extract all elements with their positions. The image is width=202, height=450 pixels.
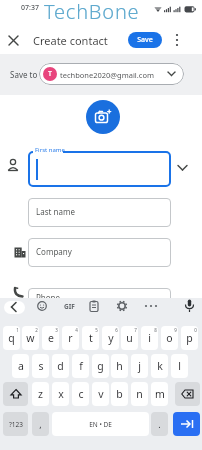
- staticText: t: [89, 331, 93, 345]
- staticText: Last name: [36, 206, 75, 217]
- staticText: 07:37: [21, 3, 39, 13]
- staticText: T: [48, 69, 52, 79]
- staticText: Create contact: [33, 33, 108, 48]
- button[interactable]: q: [3, 326, 20, 350]
- staticText: f: [79, 359, 83, 373]
- staticText: Save: [137, 35, 153, 45]
- button[interactable]: h: [111, 354, 128, 378]
- staticText: 5: [95, 327, 98, 333]
- button[interactable]: [4, 31, 22, 49]
- staticText: q: [8, 331, 15, 345]
- button[interactable]: j: [131, 354, 148, 378]
- button[interactable]: .: [151, 412, 168, 436]
- button[interactable]: t: [82, 326, 99, 350]
- staticText: x: [58, 387, 64, 401]
- staticText: o: [166, 331, 173, 345]
- staticText: v: [98, 387, 104, 401]
- button[interactable]: u: [121, 326, 138, 350]
- button[interactable]: [177, 164, 188, 172]
- staticText: w: [26, 331, 35, 345]
- button[interactable]: [37, 301, 47, 311]
- button[interactable]: [86, 100, 120, 134]
- button[interactable]: Phone: [28, 288, 171, 317]
- staticText: u: [126, 331, 133, 345]
- button[interactable]: b: [111, 382, 128, 406]
- staticText: First name: [35, 146, 65, 154]
- button[interactable]: T: [39, 63, 184, 85]
- staticText: k: [157, 359, 163, 373]
- button[interactable]: p: [181, 326, 198, 350]
- staticText: y: [108, 331, 114, 345]
- button[interactable]: [8, 301, 20, 313]
- button[interactable]: f: [72, 354, 89, 378]
- button[interactable]: [175, 382, 200, 406]
- button[interactable]: l: [171, 354, 188, 378]
- button[interactable]: EN • DE: [52, 412, 149, 436]
- staticText: Phone: [36, 292, 61, 303]
- staticText: 2: [35, 327, 38, 333]
- staticText: s: [38, 359, 44, 373]
- button[interactable]: x: [52, 382, 69, 406]
- staticText: TechBone: [44, 0, 140, 25]
- staticText: m: [155, 387, 165, 401]
- button[interactable]: Company: [28, 238, 171, 267]
- button[interactable]: [116, 300, 128, 312]
- button[interactable]: GIF: [60, 301, 78, 311]
- staticText: EN • DE: [89, 420, 112, 429]
- staticText: g: [97, 359, 104, 373]
- staticText: l: [178, 359, 181, 373]
- button[interactable]: [143, 303, 159, 309]
- staticText: r: [68, 331, 73, 345]
- button[interactable]: y: [102, 326, 119, 350]
- staticText: n: [136, 387, 143, 401]
- button[interactable]: [184, 299, 195, 313]
- staticText: a: [18, 359, 24, 373]
- staticText: GIF: [64, 302, 75, 311]
- button[interactable]: Last name: [28, 198, 171, 227]
- button[interactable]: m: [151, 382, 168, 406]
- staticText: e: [48, 331, 54, 345]
- staticText: z: [38, 387, 43, 401]
- button[interactable]: r: [62, 326, 79, 350]
- button[interactable]: o: [161, 326, 178, 350]
- staticText: d: [57, 359, 64, 373]
- staticText: 8: [154, 327, 157, 333]
- button[interactable]: Save: [128, 32, 162, 48]
- staticText: 4: [75, 327, 78, 333]
- button[interactable]: i: [141, 326, 158, 350]
- staticText: 6: [115, 327, 118, 333]
- button[interactable]: ?123: [3, 412, 28, 436]
- button[interactable]: d: [52, 354, 69, 378]
- button[interactable]: z: [32, 382, 49, 406]
- staticText: 3: [55, 327, 58, 333]
- staticText: ?123: [9, 420, 23, 429]
- button[interactable]: n: [131, 382, 148, 406]
- staticText: b: [116, 387, 123, 401]
- staticText: 1: [16, 327, 19, 333]
- button[interactable]: [172, 32, 182, 48]
- button[interactable]: g: [92, 354, 109, 378]
- button[interactable]: a: [12, 354, 29, 378]
- staticText: 9: [174, 327, 177, 333]
- button[interactable]: [173, 412, 200, 436]
- button[interactable]: ,: [32, 412, 49, 436]
- staticText: Company: [36, 246, 72, 257]
- button[interactable]: [3, 382, 28, 406]
- button[interactable]: w: [22, 326, 39, 350]
- staticText: c: [78, 387, 84, 401]
- button[interactable]: [28, 151, 171, 187]
- staticText: p: [186, 331, 193, 345]
- staticText: Save to: [10, 69, 38, 80]
- button[interactable]: [89, 300, 99, 312]
- staticText: j: [138, 359, 141, 373]
- button[interactable]: e: [42, 326, 59, 350]
- staticText: techbone2020@gmail.com: [60, 70, 154, 80]
- staticText: ,: [39, 418, 42, 430]
- staticText: 7: [134, 327, 137, 333]
- staticText: h: [116, 359, 123, 373]
- button[interactable]: c: [72, 382, 89, 406]
- button[interactable]: k: [151, 354, 168, 378]
- button[interactable]: v: [92, 382, 109, 406]
- button[interactable]: s: [32, 354, 49, 378]
- staticText: 0: [194, 327, 197, 333]
